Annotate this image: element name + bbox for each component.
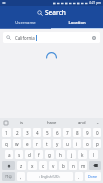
- button[interactable]: r: [33, 139, 41, 148]
- staticText: 7: [66, 130, 69, 136]
- staticText: 6: [56, 130, 59, 136]
- staticText: have: [47, 120, 57, 126]
- button[interactable]: e: [23, 139, 31, 148]
- button[interactable]: 6: [53, 128, 61, 137]
- button[interactable]: f: [35, 150, 43, 159]
- staticText: 8: [76, 130, 79, 136]
- button[interactable]: More options: [95, 120, 100, 125]
- staticText: v: [52, 163, 55, 169]
- staticText: r: [36, 141, 38, 147]
- button[interactable]: Done: [85, 172, 101, 181]
- staticText: d: [28, 152, 31, 158]
- button[interactable]: y: [53, 139, 61, 148]
- button[interactable]: ?1☺: [2, 172, 15, 181]
- staticText: 4: [36, 130, 39, 136]
- button[interactable]: is: [8, 118, 35, 127]
- staticText: 1: [5, 130, 8, 136]
- staticText: z: [20, 163, 23, 169]
- button[interactable]: k: [78, 150, 87, 159]
- button[interactable]: 0: [93, 128, 101, 137]
- button[interactable]: Location: [51, 18, 103, 28]
- button[interactable]: 3: [23, 128, 31, 137]
- staticText: a: [8, 152, 11, 158]
- staticText: 0: [96, 130, 99, 136]
- staticText: 4:21 pm: [89, 1, 102, 5]
- staticText: e: [26, 141, 29, 147]
- staticText: l: [93, 152, 95, 158]
- button[interactable]: ‹ English (US) ›: [27, 172, 73, 181]
- staticText: Search: [45, 8, 66, 17]
- staticText: ⌄: [96, 120, 100, 125]
- button[interactable]: 8: [73, 128, 81, 137]
- staticText: w: [15, 141, 19, 147]
- button[interactable]: m: [79, 161, 87, 170]
- button[interactable]: ,: [17, 172, 25, 181]
- staticText: n: [72, 163, 75, 169]
- button[interactable]: 2: [13, 128, 21, 137]
- button[interactable]: n: [69, 161, 77, 170]
- staticText: 2: [16, 130, 19, 136]
- staticText: k: [81, 152, 84, 158]
- staticText: Username: [15, 20, 36, 26]
- button[interactable]: x: [28, 161, 37, 170]
- staticText: and: [78, 120, 86, 126]
- button[interactable]: have: [35, 118, 68, 127]
- staticText: j: [71, 152, 73, 158]
- staticText: q: [5, 141, 8, 147]
- staticText: y: [56, 141, 59, 147]
- button[interactable]: .: [75, 172, 83, 181]
- button[interactable]: 7: [63, 128, 71, 137]
- button[interactable]: Clear search: [91, 35, 97, 41]
- button[interactable]: i: [73, 139, 81, 148]
- staticText: 9: [86, 130, 89, 136]
- button[interactable]: z: [17, 161, 26, 170]
- button[interactable]: 4: [33, 128, 41, 137]
- button[interactable]: h: [56, 150, 65, 159]
- staticText: x: [31, 163, 34, 169]
- button[interactable]: Username: [0, 18, 51, 28]
- button[interactable]: w: [13, 139, 21, 148]
- button[interactable]: t: [43, 139, 51, 148]
- staticText: Location: [68, 20, 86, 26]
- staticText: .: [78, 174, 80, 180]
- staticText: California: [15, 35, 35, 41]
- staticText: c: [42, 163, 45, 169]
- button[interactable]: 5: [43, 128, 51, 137]
- button[interactable]: b: [59, 161, 67, 170]
- staticText: s: [18, 152, 21, 158]
- staticText: ,: [20, 174, 22, 180]
- button[interactable]: a: [5, 150, 13, 159]
- staticText: p: [96, 141, 99, 147]
- staticText: u: [66, 141, 69, 147]
- button[interactable]: p: [93, 139, 101, 148]
- staticText: 3: [26, 130, 29, 136]
- staticText: i: [76, 141, 78, 147]
- button[interactable]: 9: [83, 128, 91, 137]
- staticText: o: [86, 141, 89, 147]
- button[interactable]: v: [49, 161, 57, 170]
- button[interactable]: c: [39, 161, 47, 170]
- button[interactable]: 1: [2, 128, 11, 137]
- staticText: ?1☺: [5, 174, 12, 179]
- button[interactable]: Shift: [2, 161, 15, 170]
- staticText: f: [38, 152, 40, 158]
- staticText: t: [46, 141, 48, 147]
- button[interactable]: and: [68, 118, 95, 127]
- staticText: g: [48, 152, 51, 158]
- button[interactable]: California: [3, 32, 100, 43]
- button[interactable]: s: [15, 150, 23, 159]
- button[interactable]: l: [89, 150, 98, 159]
- staticText: b: [62, 163, 65, 169]
- staticText: Done: [88, 174, 98, 179]
- staticText: 5: [46, 130, 49, 136]
- button[interactable]: Clipboard: [3, 120, 8, 125]
- button[interactable]: g: [45, 150, 54, 159]
- button[interactable]: q: [2, 139, 11, 148]
- staticText: h: [59, 152, 62, 158]
- button[interactable]: u: [63, 139, 71, 148]
- button[interactable]: Backspace: [89, 161, 101, 170]
- button[interactable]: o: [83, 139, 91, 148]
- staticText: m: [81, 163, 86, 169]
- button[interactable]: d: [25, 150, 33, 159]
- button[interactable]: j: [67, 150, 76, 159]
